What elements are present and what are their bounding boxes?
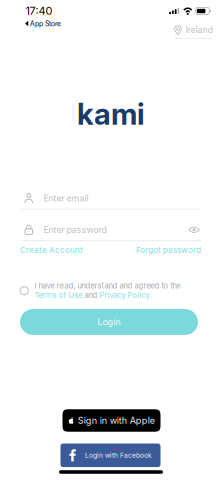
button[interactable]: Show password: [188, 225, 200, 234]
button[interactable]: Ireland: [174, 25, 213, 39]
button[interactable]: Create Account: [20, 245, 83, 255]
staticText: Login: [97, 316, 120, 327]
staticText: kami: [77, 96, 145, 132]
staticText: Enter password: [44, 224, 107, 235]
button[interactable]: Sign in with Apple: [62, 409, 160, 432]
staticText: Ireland: [186, 25, 213, 35]
staticText: Terms of Use: [34, 291, 82, 300]
staticText: App Store: [30, 19, 61, 28]
button[interactable]: Login: [20, 309, 198, 335]
staticText: Sign in with Apple: [78, 415, 155, 426]
button[interactable]: I have read, understand and agreed to th…: [20, 281, 203, 300]
staticText: 17:40: [26, 4, 53, 17]
button[interactable]: Login with Facebook: [60, 444, 160, 467]
staticText: Privacy Policy.: [99, 291, 151, 300]
staticText: I have read, understand and agreed to th…: [34, 281, 180, 290]
staticText: and: [82, 291, 99, 300]
button[interactable]: Forgot password: [136, 245, 201, 255]
staticText: Create Account: [20, 245, 83, 255]
staticText: Forgot password: [136, 245, 201, 255]
staticText: Login with Facebook: [85, 451, 152, 459]
staticText: Enter email: [44, 193, 89, 203]
